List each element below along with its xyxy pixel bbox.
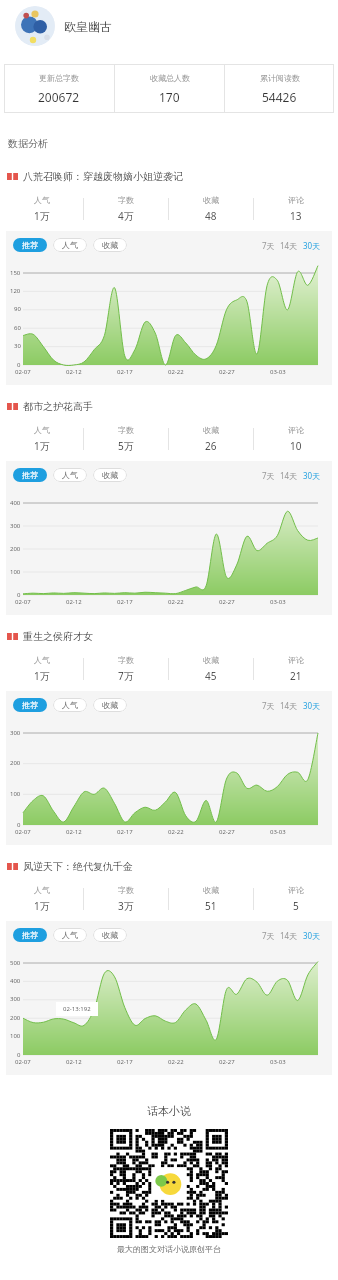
staticText: 100 [10, 568, 21, 576]
button[interactable]: 字数 [84, 422, 168, 456]
button[interactable]: 人气 [0, 192, 83, 226]
staticText: 02-22 [168, 598, 184, 606]
button[interactable]: 评论 [254, 882, 338, 916]
button[interactable]: 收藏 [169, 192, 253, 226]
button[interactable]: 7天 [262, 240, 275, 251]
button[interactable]: 重生之侯府才女 [7, 630, 338, 642]
button[interactable]: 收藏 [169, 652, 253, 686]
button[interactable]: 30天 [303, 700, 321, 711]
button[interactable]: 收藏 [93, 698, 127, 712]
staticText: 字数 [118, 425, 134, 435]
button[interactable]: 推荐 [13, 468, 47, 482]
staticText: 人气 [34, 655, 50, 665]
staticText: 5 [293, 899, 299, 913]
staticText: 收藏 [102, 700, 118, 710]
staticText: 02-07 [15, 828, 31, 836]
staticText: 人气 [34, 195, 50, 205]
button[interactable]: 收藏总人数 [115, 64, 224, 113]
button[interactable]: 人气 [53, 928, 87, 942]
button[interactable]: 人气 [53, 238, 87, 252]
button[interactable]: 30天 [303, 930, 321, 941]
button[interactable]: 推荐 [13, 698, 47, 712]
staticText: 02-27 [219, 598, 235, 606]
button[interactable]: 凤逆天下：绝代复仇千金 [7, 860, 338, 872]
staticText: 02-22 [168, 368, 184, 376]
button[interactable]: 都市之护花高手 [7, 400, 338, 412]
button[interactable]: 收藏 [169, 422, 253, 456]
staticText: 02-17 [117, 368, 133, 376]
staticText: 1万 [34, 669, 50, 683]
button[interactable]: 八荒召唤师：穿越废物嫡小姐逆袭记 [7, 170, 338, 182]
staticText: 03-03 [270, 1058, 286, 1066]
staticText: 人气 [62, 700, 78, 710]
button[interactable]: 人气 [0, 882, 83, 916]
staticText: 推荐 [22, 240, 38, 250]
staticText: 300 [10, 729, 21, 737]
button[interactable]: 字数 [84, 192, 168, 226]
button[interactable]: 更新总字数 [4, 64, 114, 113]
button[interactable]: 7天 [262, 700, 275, 711]
staticText: 02-12 [66, 368, 82, 376]
staticText: 02-27 [219, 368, 235, 376]
staticText: 200 [10, 1014, 21, 1022]
staticText: 人气 [34, 425, 50, 435]
button[interactable]: Avatar [15, 6, 55, 46]
staticText: 02-22 [168, 828, 184, 836]
staticText: 30 [14, 342, 21, 350]
button[interactable]: 14天 [280, 930, 298, 941]
button[interactable]: 人气 [0, 652, 83, 686]
staticText: 人气 [34, 885, 50, 895]
staticText: 02-27 [219, 828, 235, 836]
button[interactable]: 30天 [303, 240, 321, 251]
staticText: 0 [17, 821, 21, 829]
button[interactable]: 累计阅读数 [225, 64, 334, 113]
button[interactable]: 30天 [303, 470, 321, 481]
staticText: 推荐 [22, 470, 38, 480]
staticText: 评论 [288, 885, 304, 895]
button[interactable]: 字数 [84, 882, 168, 916]
button[interactable]: 7天 [262, 470, 275, 481]
staticText: 都市之护花高手 [23, 400, 93, 412]
button[interactable]: 14天 [280, 470, 298, 481]
staticText: 21 [290, 669, 302, 683]
staticText: 02-07 [15, 598, 31, 606]
staticText: 400 [10, 977, 21, 985]
button[interactable]: 7天 [262, 930, 275, 941]
staticText: 0 [17, 361, 21, 369]
staticText: 字数 [118, 655, 134, 665]
staticText: 字数 [118, 885, 134, 895]
staticText: 170 [159, 89, 180, 105]
button[interactable]: 推荐 [13, 238, 47, 252]
staticText: 欧皇幽古 [64, 19, 112, 34]
staticText: 02-13:192 [63, 1005, 91, 1013]
staticText: 200 [10, 759, 21, 767]
staticText: 话本小说 [147, 1104, 191, 1118]
staticText: 02-07 [15, 1058, 31, 1066]
button[interactable]: 推荐 [13, 928, 47, 942]
staticText: 400 [10, 499, 21, 507]
button[interactable]: 评论 [254, 192, 338, 226]
staticText: 收藏 [203, 195, 219, 205]
staticText: 03-03 [270, 828, 286, 836]
button[interactable]: 字数 [84, 652, 168, 686]
button[interactable]: 人气 [53, 468, 87, 482]
button[interactable]: 14天 [280, 700, 298, 711]
button[interactable]: 评论 [254, 422, 338, 456]
button[interactable]: 收藏 [169, 882, 253, 916]
staticText: 最大的图文对话小说原创平台 [117, 1244, 221, 1254]
staticText: 1万 [34, 209, 50, 223]
staticText: 200672 [38, 89, 80, 105]
staticText: 500 [10, 959, 21, 967]
staticText: 八荒召唤师：穿越废物嫡小姐逆袭记 [23, 170, 183, 182]
staticText: 100 [10, 790, 21, 798]
button[interactable]: QR code [110, 1129, 228, 1238]
button[interactable]: 收藏 [93, 468, 127, 482]
staticText: 7万 [118, 669, 134, 683]
button[interactable]: 14天 [280, 240, 298, 251]
button[interactable]: 评论 [254, 652, 338, 686]
button[interactable]: 人气 [53, 698, 87, 712]
button[interactable]: 人气 [0, 422, 83, 456]
button[interactable]: 收藏 [93, 238, 127, 252]
button[interactable]: 收藏 [93, 928, 127, 942]
staticText: 重生之侯府才女 [23, 630, 93, 642]
